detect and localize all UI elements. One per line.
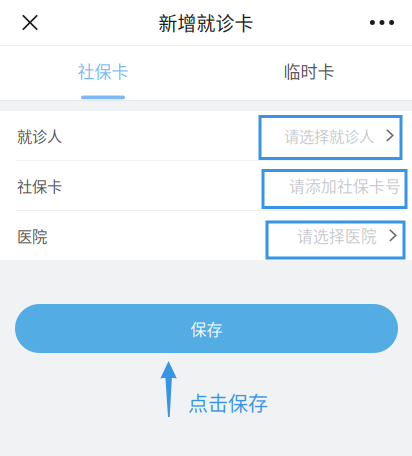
staticText: 请选择就诊人 <box>284 124 374 147</box>
staticText: 医院 <box>17 224 47 246</box>
button[interactable]: Close <box>4 0 56 45</box>
staticText: 临时卡 <box>283 58 334 83</box>
staticText: 社保卡 <box>77 58 128 83</box>
staticText: 保存 <box>190 317 222 340</box>
button[interactable]: 就诊人 <box>0 111 412 160</box>
button[interactable]: More options <box>356 0 408 45</box>
button[interactable]: 临时卡 <box>206 46 412 100</box>
staticText: 社保卡 <box>17 174 62 196</box>
staticText: 新增就诊卡 <box>158 9 253 36</box>
staticText: 点击保存 <box>188 388 268 417</box>
button[interactable]: 社保卡 <box>0 46 206 100</box>
button[interactable]: 医院 <box>0 211 412 260</box>
button[interactable]: 保存 <box>15 304 398 353</box>
staticText: 请添加社保卡号 <box>289 174 401 197</box>
staticText: 就诊人 <box>17 124 62 146</box>
button[interactable]: 社保卡 <box>0 161 412 210</box>
staticText: 请选择医院 <box>297 224 377 247</box>
